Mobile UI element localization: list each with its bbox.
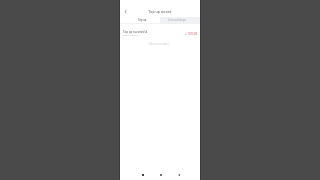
staticText: Top up successful <box>123 30 148 34</box>
staticText: 2024-01-12 10:24 <box>123 34 140 37</box>
button[interactable]: Back <box>122 8 128 14</box>
button[interactable]: Back <box>175 171 182 178</box>
button[interactable]: Home <box>157 171 164 178</box>
staticText: Top up record <box>120 9 200 14</box>
staticText: No more data <box>119 42 199 46</box>
staticText: Coin exchange <box>168 18 186 22</box>
button[interactable]: Coin exchange <box>160 17 200 23</box>
button[interactable]: Top up successful <box>120 25 200 37</box>
button[interactable]: Recents <box>139 171 146 178</box>
staticText: + 100.00 <box>185 32 198 36</box>
button[interactable]: Top up <box>120 17 160 23</box>
staticText: Top up <box>138 18 147 22</box>
